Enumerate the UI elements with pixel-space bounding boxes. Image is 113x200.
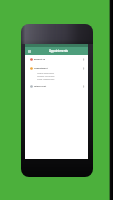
staticText: Intake Chat [34,85,47,88]
staticText: Create a appointment [37,78,55,80]
staticText: Appointment [34,67,48,70]
staticText: Schedule consultation [37,75,55,77]
button[interactable]: Walking appointment [37,71,77,74]
button[interactable]: Request In [25,55,88,63]
staticText: Walking appointment [37,72,55,74]
staticText: Appointments [49,49,68,53]
button[interactable]: Intake Chat [25,82,88,90]
staticText: Request In [34,58,45,61]
button[interactable]: Create a appointment [37,77,77,80]
button[interactable]: Menu [26,48,32,54]
button[interactable]: Appointment [25,64,88,72]
button[interactable]: Schedule consultation [37,74,77,77]
